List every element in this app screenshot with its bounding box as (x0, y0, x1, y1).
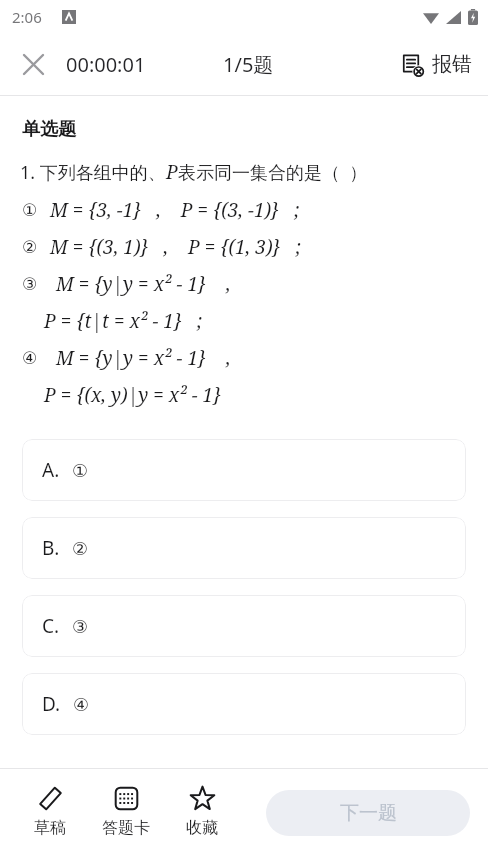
staticText: M = {y|y = x² − 1} , (56, 271, 231, 297)
staticText: ① (22, 200, 38, 220)
staticText: ④ (22, 348, 38, 368)
button[interactable]: Close (14, 45, 52, 83)
staticText: ② (22, 237, 38, 257)
button[interactable]: C. (22, 595, 466, 657)
staticText: 下一题 (340, 801, 397, 825)
staticText: 表示同一集合的是（ ） (178, 160, 368, 185)
staticText: ④ (73, 694, 90, 715)
staticText: P (166, 159, 178, 185)
staticText: M = {y|y = x² − 1} , (56, 345, 231, 371)
staticText: 报错 (432, 52, 472, 77)
staticText: P = {t|t = x² − 1} ; (44, 308, 203, 334)
button[interactable]: 答题卡 Answer sheet (88, 781, 164, 842)
button[interactable]: 收藏 Favorite (164, 781, 240, 842)
button[interactable]: A. (22, 439, 466, 501)
staticText: B. (42, 535, 60, 561)
staticText: D. (42, 691, 61, 717)
staticText: M = {3, −1} , P = {(3, −1)} ; (50, 197, 300, 223)
staticText: ③ (72, 616, 89, 637)
staticText: C. (42, 613, 60, 639)
staticText: P = {(x, y)|y = x² − 1} (44, 382, 222, 408)
staticText: 2:06 (12, 7, 42, 27)
staticText: A. (42, 457, 60, 483)
button[interactable]: 报错 (400, 46, 474, 83)
staticText: 答题卡 (102, 818, 150, 838)
staticText: ③ (22, 274, 38, 294)
staticText: 1/5题 (223, 51, 274, 78)
staticText: 00:00:01 (66, 51, 146, 78)
button[interactable]: B. (22, 517, 466, 579)
staticText: 1. 下列各组中的、 (20, 160, 166, 185)
staticText: M = {(3, 1)} , P = {(1, 3)} ; (50, 234, 301, 260)
staticText: ② (72, 538, 89, 559)
staticText: ① (72, 460, 89, 481)
button[interactable]: 下一题 (266, 790, 470, 836)
staticText: 草稿 (34, 818, 66, 838)
button[interactable]: 草稿 Draft (12, 781, 88, 842)
staticText: 单选题 (22, 118, 76, 141)
staticText: 收藏 (186, 818, 218, 838)
button[interactable]: D. (22, 673, 466, 735)
